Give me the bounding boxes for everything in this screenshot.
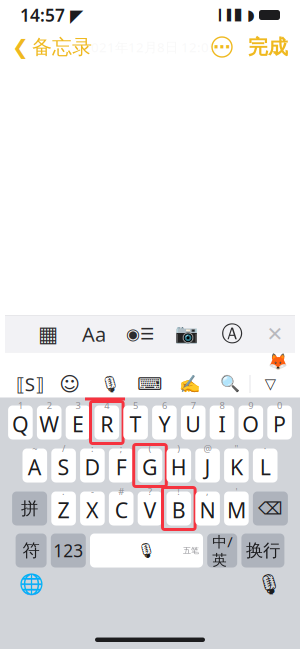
staticText: ( — [148, 442, 151, 454]
button[interactable]: Input option — [250, 370, 290, 397]
button[interactable]: 3 — [66, 405, 90, 439]
staticText: 📷 — [174, 323, 197, 345]
staticText: 0 — [277, 399, 282, 411]
staticText: F — [116, 453, 127, 481]
button[interactable]: 符 — [16, 533, 47, 567]
staticText: ▽ — [265, 376, 276, 392]
button[interactable]: ! — [166, 491, 191, 525]
button[interactable]: · — [253, 448, 277, 482]
button[interactable]: ' — [224, 491, 249, 525]
button[interactable]: Format tool — [25, 315, 71, 352]
staticText: 符 — [23, 540, 40, 561]
button[interactable]: ( — [138, 448, 162, 482]
button[interactable]: 0 — [267, 405, 292, 439]
button[interactable]: Format tool — [117, 315, 163, 352]
staticText: ~ — [32, 442, 37, 454]
staticText: 3 — [75, 399, 80, 411]
button[interactable]: # — [109, 491, 133, 525]
button[interactable]: . — [51, 491, 76, 525]
staticText: N — [200, 496, 216, 524]
button[interactable]: 换行 — [241, 533, 284, 567]
button[interactable]: Input option — [170, 370, 210, 397]
staticText: V — [143, 496, 156, 524]
button[interactable]: Close toolbar — [255, 315, 295, 352]
button[interactable]: Input option — [90, 370, 130, 397]
staticText: Ⓐ — [221, 321, 242, 347]
staticText: " — [234, 442, 238, 454]
button[interactable]: ? — [138, 491, 162, 525]
button[interactable]: Dictate — [252, 569, 286, 599]
button[interactable]: 4 — [94, 405, 119, 439]
staticText: ◗ — [247, 7, 255, 23]
staticText: ⌨ — [137, 374, 162, 394]
staticText: U — [185, 410, 201, 438]
staticText: : — [91, 442, 94, 454]
button[interactable]: ❮ — [12, 29, 92, 65]
button[interactable]: 5 — [123, 405, 148, 439]
button[interactable]: @ — [195, 448, 220, 482]
staticText: 1 — [18, 399, 23, 411]
staticText: Z — [58, 496, 70, 524]
staticText: Q — [12, 410, 29, 438]
button[interactable]: 中/英 — [207, 533, 237, 567]
button[interactable]: , — [195, 491, 220, 525]
button[interactable]: Switch keyboard — [14, 569, 48, 599]
button[interactable]: ⌫ — [253, 491, 288, 525]
staticText: 🦊 — [268, 352, 288, 371]
button[interactable]: 1 — [8, 405, 33, 439]
staticText: 14:57 ◤ — [20, 3, 83, 26]
button[interactable]: More options — [212, 37, 232, 57]
staticText: 🔍 — [220, 375, 240, 393]
staticText: R — [100, 410, 113, 438]
staticText: ❮ — [12, 36, 29, 58]
button[interactable]: 2 — [37, 405, 61, 439]
button[interactable]: ) — [166, 448, 191, 482]
staticText: T — [130, 410, 142, 438]
button[interactable]: 6 — [152, 405, 177, 439]
staticText: . — [62, 485, 65, 497]
staticText: 4 — [104, 399, 109, 411]
button[interactable]: ; — [109, 448, 133, 482]
button[interactable]: 9 — [238, 405, 263, 439]
staticText: 6 — [162, 399, 167, 411]
staticText: 拼 — [21, 498, 38, 519]
button[interactable]: Input option — [10, 370, 50, 397]
staticText: ) — [177, 442, 180, 454]
button[interactable]: Format tool — [71, 315, 117, 352]
button[interactable]: Format tool — [163, 315, 209, 352]
staticText: E — [72, 410, 84, 438]
staticText: 🎙 — [137, 542, 156, 559]
button[interactable]: Input option — [210, 370, 250, 397]
staticText: 9 — [248, 399, 253, 411]
button[interactable]: Input option — [130, 370, 170, 397]
staticText: 🎙 — [256, 573, 281, 596]
staticText: ▦ — [38, 322, 58, 346]
button[interactable]: ~ — [22, 448, 47, 482]
staticText: ▎▌▊ — [219, 9, 243, 21]
button[interactable]: / — [51, 448, 76, 482]
button[interactable]: : — [80, 448, 105, 482]
staticText: ? — [148, 485, 152, 497]
staticText: 123 — [53, 539, 83, 562]
staticText: 备忘录 — [32, 35, 92, 59]
staticText: ✍ — [179, 374, 201, 394]
staticText: J — [205, 453, 211, 481]
button[interactable]: - — [80, 491, 105, 525]
button[interactable]: 完成 — [232, 29, 288, 65]
staticText: ! — [177, 485, 180, 497]
staticText: P — [273, 410, 286, 438]
staticText: ⟦S⟧ — [16, 372, 44, 396]
staticText: , — [206, 485, 209, 497]
staticText: I — [218, 410, 225, 438]
button[interactable]: Format tool — [209, 315, 255, 352]
button[interactable]: 7 — [181, 405, 205, 439]
button[interactable]: Input option — [50, 370, 90, 397]
button[interactable]: 拼 — [12, 491, 47, 525]
staticText: 2 — [47, 399, 52, 411]
button[interactable]: 8 — [210, 405, 234, 439]
staticText: 中/英 — [212, 532, 232, 569]
staticText: 五笔 — [183, 546, 199, 555]
button[interactable]: 123 — [51, 533, 86, 567]
button[interactable]: " — [224, 448, 249, 482]
staticText: 换行 — [246, 540, 280, 561]
